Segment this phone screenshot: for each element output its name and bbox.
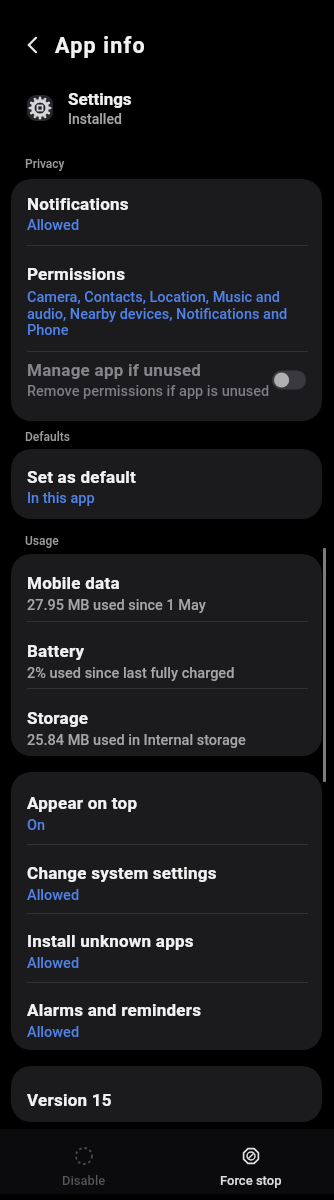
staticText: Notifications <box>27 194 129 214</box>
button[interactable]: Version 15 <box>11 1066 322 1122</box>
staticText: Battery <box>27 641 85 661</box>
staticText: Settings <box>68 89 132 109</box>
button[interactable]: Disable <box>0 1129 167 1194</box>
staticText: 27.95 MB used since 1 May <box>27 597 206 614</box>
button[interactable]: Install unknown apps <box>11 914 322 982</box>
button[interactable]: Storage <box>11 689 322 756</box>
staticText: Mobile data <box>27 573 120 593</box>
staticText: Change system settings <box>27 863 217 883</box>
staticText: Alarms and reminders <box>27 1000 202 1020</box>
staticText: Defaults <box>25 430 70 444</box>
button[interactable]: Mobile data <box>11 554 322 621</box>
staticText: On <box>27 817 46 834</box>
staticText: Set as default <box>27 467 136 487</box>
staticText: Storage <box>27 708 89 728</box>
button[interactable]: Alarms and reminders <box>11 983 322 1050</box>
staticText: In this app <box>27 490 95 507</box>
staticText: Allowed <box>27 1024 80 1041</box>
button[interactable]: Appear on top <box>11 772 322 844</box>
staticText: Camera, Contacts, Location, Music and au… <box>27 289 288 338</box>
staticText: Permissions <box>27 264 126 284</box>
staticText: Allowed <box>27 887 80 904</box>
staticText: Disable <box>62 1173 106 1188</box>
staticText: Usage <box>25 534 59 548</box>
staticText: Appear on top <box>27 793 138 813</box>
staticText: Remove permissions if app is unused <box>27 383 270 400</box>
button[interactable]: Change system settings <box>11 845 322 913</box>
staticText: 2% used since last fully charged <box>27 665 235 682</box>
staticText: Privacy <box>25 157 65 171</box>
button[interactable]: Battery <box>11 622 322 688</box>
staticText: App info <box>55 33 146 58</box>
staticText: Allowed <box>27 955 80 972</box>
staticText: Install unknown apps <box>27 931 194 951</box>
button[interactable]: Manage app if unused <box>11 352 322 407</box>
button[interactable]: Set as default <box>11 449 322 519</box>
staticText: Allowed <box>27 217 80 234</box>
button[interactable] <box>20 33 44 57</box>
button[interactable]: Permissions <box>11 246 322 351</box>
staticText: Installed <box>68 111 122 127</box>
staticText: 25.84 MB used in Internal storage <box>27 732 246 749</box>
button[interactable]: Force stop <box>167 1129 334 1194</box>
button[interactable]: Notifications <box>11 179 322 245</box>
staticText: Manage app if unused <box>27 360 202 380</box>
staticText: Version 15 <box>27 1090 112 1110</box>
staticText: Force stop <box>220 1173 282 1188</box>
